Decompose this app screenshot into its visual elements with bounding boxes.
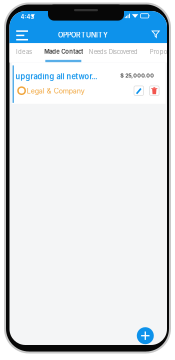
button[interactable]: Filter (147, 24, 165, 44)
staticText: Proposal (150, 48, 175, 55)
staticText: Ideas (16, 48, 32, 55)
button[interactable]: Menu (12, 25, 33, 45)
button[interactable]: Proposal (150, 43, 175, 60)
staticText: Needs Discovered (89, 48, 138, 55)
button[interactable]: Made Contact (44, 43, 83, 60)
button[interactable]: Delete (149, 86, 159, 95)
button[interactable]: Add opportunity (137, 327, 154, 344)
staticText: Made Contact (44, 48, 83, 55)
button[interactable]: Edit (134, 86, 144, 95)
button[interactable]: Ideas (16, 43, 32, 60)
staticText: upgrading all networ... (15, 72, 97, 81)
staticText: $ 25,000.00 (120, 72, 154, 79)
button[interactable]: Needs Discovered (89, 43, 138, 60)
staticText: Legal & Company (27, 87, 85, 95)
staticText: OPPORTUNITY (58, 31, 108, 39)
staticText: 4:43 (20, 13, 34, 20)
